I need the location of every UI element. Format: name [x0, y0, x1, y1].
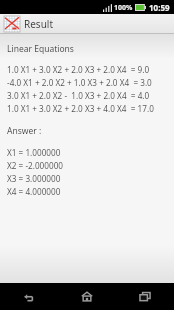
- staticText: X2 = -2.000000: [7, 160, 64, 171]
- staticText: 10:59: [149, 2, 170, 13]
- staticText: Answer :: [7, 125, 42, 137]
- staticText: 3.0 X1 + 2.0 X2 - 1.0 X3 + 2.0 X4 = 4.0: [7, 90, 150, 101]
- staticText: Result: [24, 17, 54, 31]
- staticText: -4.0 X1 + 2.0 X2 + 1.0 X3 + 2.0 X4 = 3.0: [7, 77, 152, 88]
- staticText: X4 = 4.000000: [7, 186, 61, 197]
- button[interactable]: Home: [58, 283, 116, 310]
- staticText: X3 = 3.000000: [7, 173, 61, 184]
- staticText: 1.0 X1 + 3.0 X2 + 2.0 X3 + 4.0 X4 = 17.0: [7, 103, 154, 114]
- staticText: 1.0 X1 + 3.0 X2 + 2.0 X3 + 2.0 X4 = 9.0: [7, 64, 150, 75]
- button[interactable]: App icon: [0, 14, 174, 33]
- staticText: X1 = 1.000000: [7, 147, 61, 158]
- button[interactable]: Back: [0, 283, 58, 310]
- staticText: Linear Equations: [7, 43, 74, 55]
- other: App icon: [4, 16, 20, 32]
- button[interactable]: Recent apps: [116, 283, 174, 310]
- staticText: 100%: [114, 3, 133, 13]
